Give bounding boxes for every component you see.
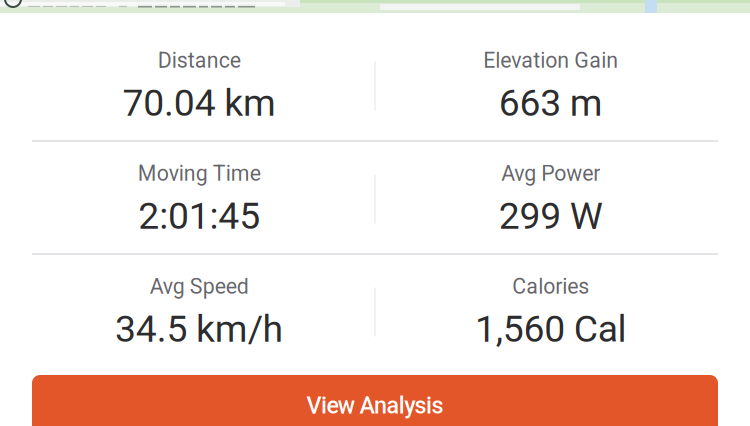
staticText: 70.04 km [122,81,276,125]
staticText: 663 m [499,81,603,125]
staticText: Distance [158,48,241,73]
button[interactable]: View Analysis [32,375,718,426]
staticText: 1,560 Cal [475,307,626,351]
staticText: Calories [512,274,589,299]
staticText: Avg Speed [150,274,249,299]
staticText: 34.5 km/h [115,307,283,351]
staticText: Moving Time [138,161,261,186]
staticText: Elevation Gain [483,48,618,73]
staticText: 2:01:45 [138,194,260,238]
staticText: 299 W [499,194,603,238]
staticText: View Analysis [307,392,443,419]
staticText: Avg Power [501,161,600,186]
